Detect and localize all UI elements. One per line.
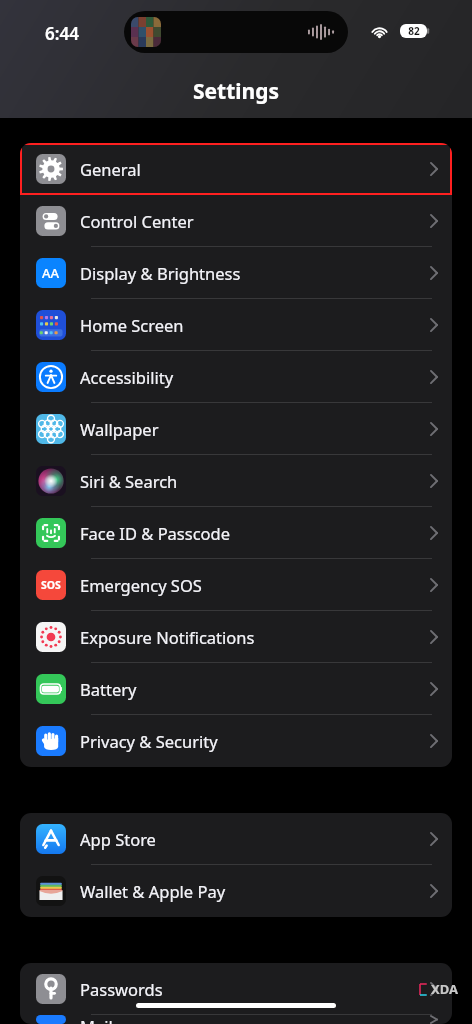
staticText: Mail <box>80 1015 113 1024</box>
staticText: App Store <box>80 828 156 850</box>
button[interactable]: AA <box>20 247 452 299</box>
button[interactable]: App Store <box>20 813 452 865</box>
button[interactable]: Control Center <box>20 195 452 247</box>
staticText: General <box>80 158 141 180</box>
staticText: AA <box>42 264 60 282</box>
staticText: Accessibility <box>80 366 174 388</box>
button[interactable]: Battery <box>20 663 452 715</box>
staticText: XDA <box>431 980 458 998</box>
staticText: Privacy & Security <box>80 730 218 752</box>
staticText: 6:44 <box>45 22 79 45</box>
staticText: SOS <box>41 578 61 592</box>
staticText: Emergency SOS <box>80 574 202 596</box>
button[interactable]: General <box>20 143 452 195</box>
button[interactable]: Passwords <box>20 963 452 1015</box>
staticText: Control Center <box>80 210 194 232</box>
staticText: 82 <box>408 24 420 38</box>
staticText: Settings <box>193 77 280 106</box>
staticText: Display & Brightness <box>80 262 241 284</box>
button[interactable]: Siri & Search <box>20 455 452 507</box>
staticText: Passwords <box>80 978 163 1000</box>
button[interactable]: Face ID & Passcode <box>20 507 452 559</box>
staticText: Battery <box>80 678 137 700</box>
button[interactable]: Exposure Notifications <box>20 611 452 663</box>
staticText: Wallet & Apple Pay <box>80 880 226 902</box>
staticText: Wallpaper <box>80 418 159 440</box>
button[interactable]: Mail <box>20 1015 452 1024</box>
staticText: Home Screen <box>80 314 184 336</box>
button[interactable]: Wallpaper <box>20 403 452 455</box>
staticText: Siri & Search <box>80 470 178 492</box>
button[interactable]: Wallet & Apple Pay <box>20 865 452 917</box>
staticText: Face ID & Passcode <box>80 522 231 544</box>
button[interactable]: Accessibility <box>20 351 452 403</box>
button[interactable]: Privacy & Security <box>20 715 452 767</box>
button[interactable]: SOS <box>20 559 452 611</box>
button[interactable]: Home Screen <box>20 299 452 351</box>
staticText: Exposure Notifications <box>80 626 255 648</box>
